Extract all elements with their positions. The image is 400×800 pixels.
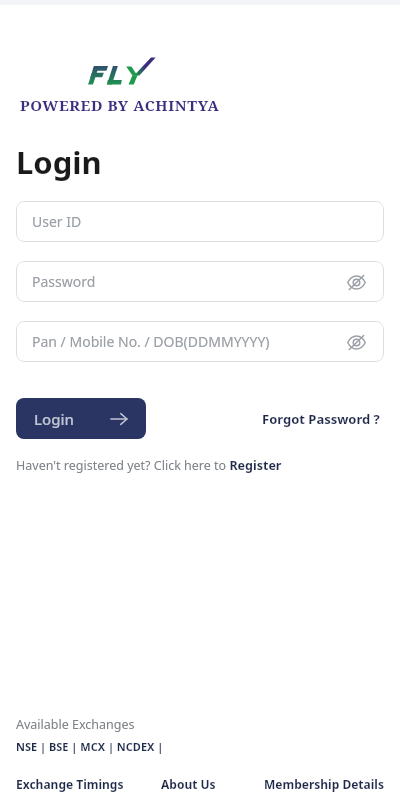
button[interactable]: Show password xyxy=(344,270,368,294)
button[interactable]: Forgot Password ? xyxy=(258,406,384,432)
button[interactable]: Haven't registered yet? Click here to Re… xyxy=(16,457,282,474)
button[interactable]: Login xyxy=(16,398,146,439)
staticText: Login xyxy=(16,141,102,183)
button[interactable]: About Us xyxy=(131,776,246,792)
staticText: About Us xyxy=(161,776,216,792)
staticText: Available Exchanges xyxy=(16,716,135,733)
button[interactable]: Membership Details xyxy=(246,776,384,792)
staticText: NSE | BSE | MCX | NCDEX | xyxy=(16,739,164,754)
staticText: Exchange Timings xyxy=(16,776,124,792)
staticText: Login xyxy=(34,409,74,429)
staticText: POWERED BY ACHINTYA xyxy=(20,95,220,115)
button[interactable]: Password xyxy=(16,261,384,302)
staticText: Password xyxy=(32,272,344,291)
staticText: User ID xyxy=(32,212,368,231)
button[interactable]: Pan / Mobile No. / DOB(DDMMYYYY) xyxy=(16,321,384,362)
button[interactable]: User ID xyxy=(16,201,384,242)
staticText: Forgot Password ? xyxy=(262,410,380,428)
staticText: Pan / Mobile No. / DOB(DDMMYYYY) xyxy=(32,332,344,351)
staticText: Membership Details xyxy=(264,776,384,792)
button[interactable]: Exchange Timings xyxy=(16,776,131,792)
button[interactable]: Show password xyxy=(344,330,368,354)
staticText: Haven't registered yet? Click here to Re… xyxy=(16,457,282,474)
